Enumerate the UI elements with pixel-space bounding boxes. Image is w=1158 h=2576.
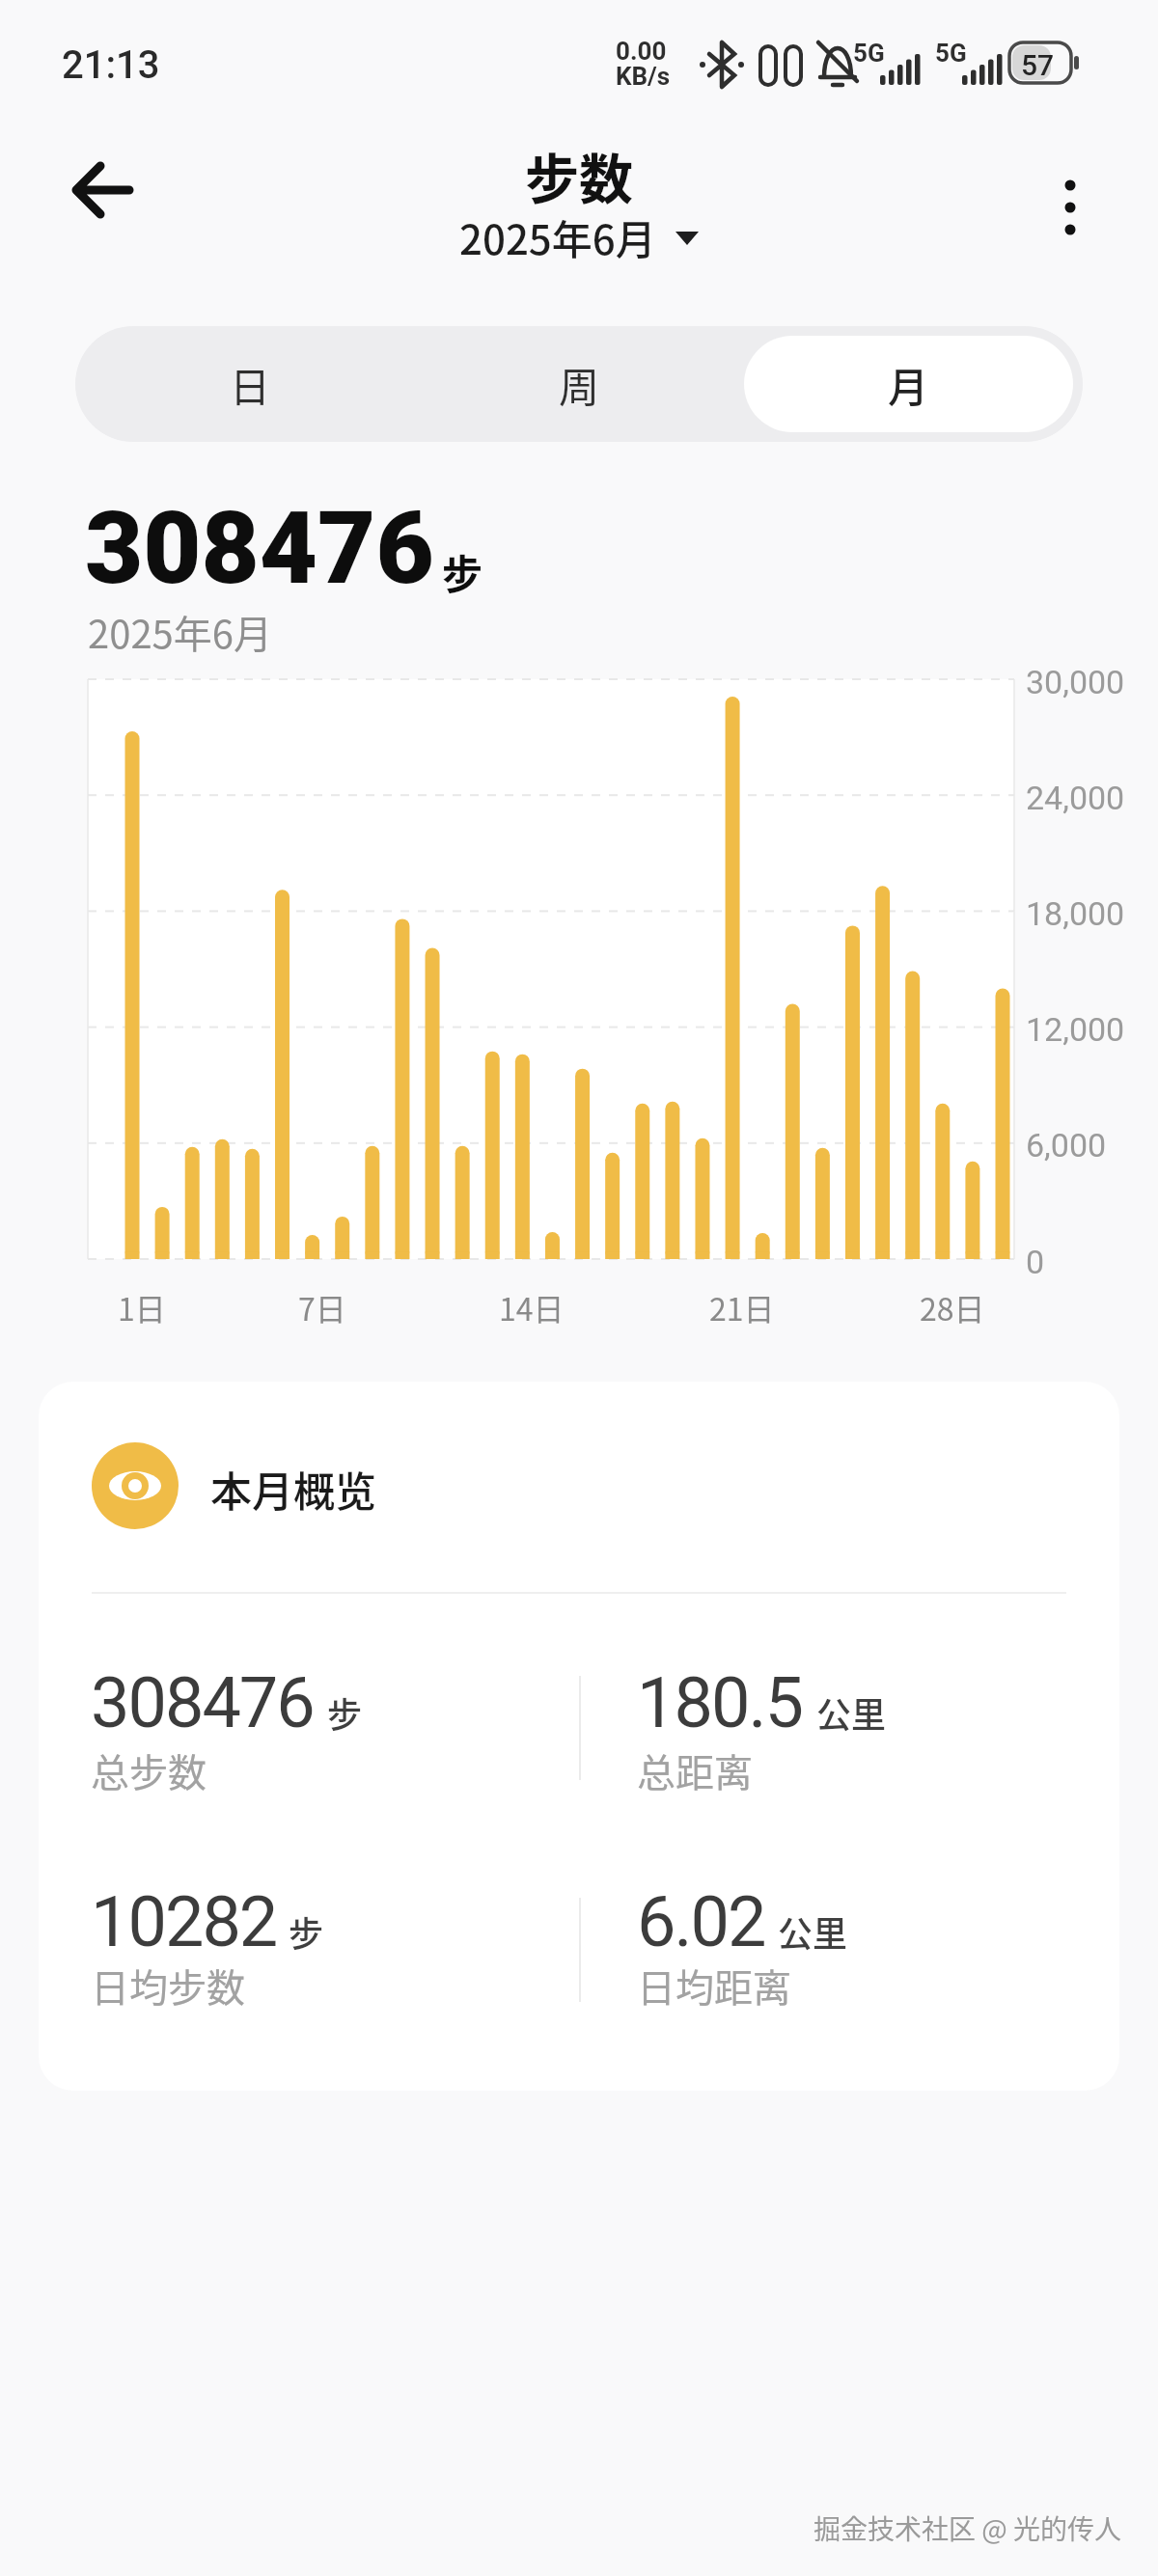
staticText: 6.02	[637, 1881, 765, 1962]
staticText: 步	[289, 1906, 324, 1957]
staticText: 14日	[499, 1285, 565, 1329]
button[interactable]	[39, 1382, 1119, 2091]
staticText: 日	[230, 355, 271, 414]
staticText: 月	[888, 355, 929, 414]
staticText: 5G	[853, 39, 885, 68]
staticText: 本月概览	[210, 1459, 376, 1519]
button[interactable]	[1033, 164, 1110, 251]
staticText: 7日	[298, 1285, 346, 1329]
staticText: 57	[1021, 48, 1055, 82]
staticText: 24,000	[1026, 779, 1125, 817]
staticText: 0	[1026, 1243, 1045, 1281]
staticText: 308476	[91, 1662, 314, 1743]
staticText: 周	[559, 355, 600, 414]
staticText: 总步数	[91, 1742, 207, 1798]
staticText: 6,000	[1026, 1126, 1107, 1165]
staticText: 21日	[709, 1285, 775, 1329]
staticText: 308476	[85, 490, 434, 608]
staticText: 28日	[920, 1285, 985, 1329]
staticText: 日均距离	[637, 1958, 791, 2014]
button[interactable]: 周	[415, 336, 744, 432]
staticText: 步	[327, 1687, 363, 1738]
staticText: 30,000	[1026, 663, 1125, 701]
staticText: 12,000	[1026, 1010, 1125, 1049]
staticText: 10282	[91, 1881, 277, 1962]
staticText: 2025年6月	[88, 604, 272, 660]
staticText: 日均步数	[91, 1958, 245, 2014]
button[interactable]: 2025年6月	[459, 207, 699, 266]
staticText: 0.00	[616, 37, 667, 66]
button[interactable]: 月	[744, 336, 1073, 432]
button[interactable]	[58, 150, 150, 236]
staticText: 步数	[525, 136, 633, 214]
staticText: 总距离	[637, 1742, 753, 1798]
staticText: 公里	[816, 1687, 887, 1738]
staticText: 1日	[118, 1285, 166, 1329]
staticText: 公里	[778, 1906, 848, 1957]
staticText: 掘金技术社区 @ 光的传人	[813, 2508, 1122, 2548]
staticText: 5G	[935, 39, 967, 68]
staticText: KB/s	[616, 62, 671, 91]
button[interactable]: 日	[85, 336, 415, 432]
staticText: 21:13	[62, 42, 160, 88]
staticText: 180.5	[637, 1662, 802, 1743]
staticText: 步	[442, 542, 483, 601]
staticText: 18,000	[1026, 894, 1125, 933]
staticText: 2025年6月	[459, 207, 656, 266]
